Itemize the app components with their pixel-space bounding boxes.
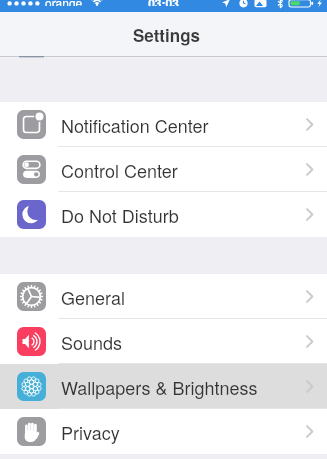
staticText: General <box>61 284 125 310</box>
button[interactable]: Do Not Disturb <box>0 192 327 237</box>
button[interactable]: General <box>0 274 327 319</box>
staticText: Wallpapers & Brightness <box>61 374 258 400</box>
staticText: Settings <box>133 23 200 47</box>
button[interactable]: Notification Center <box>0 102 327 147</box>
staticText: Do Not Disturb <box>61 202 179 228</box>
staticText: 03:03 <box>0 0 327 6</box>
staticText: Notification Center <box>61 112 209 138</box>
button[interactable]: Control Center <box>0 147 327 192</box>
button[interactable]: Sounds <box>0 319 327 364</box>
staticText: Sounds <box>61 329 123 355</box>
staticText: orange <box>45 0 83 6</box>
staticText: Control Center <box>61 157 178 183</box>
button[interactable]: Privacy <box>0 409 327 454</box>
button[interactable]: Wallpapers & Brightness <box>0 364 327 409</box>
staticText: Privacy <box>61 419 120 445</box>
